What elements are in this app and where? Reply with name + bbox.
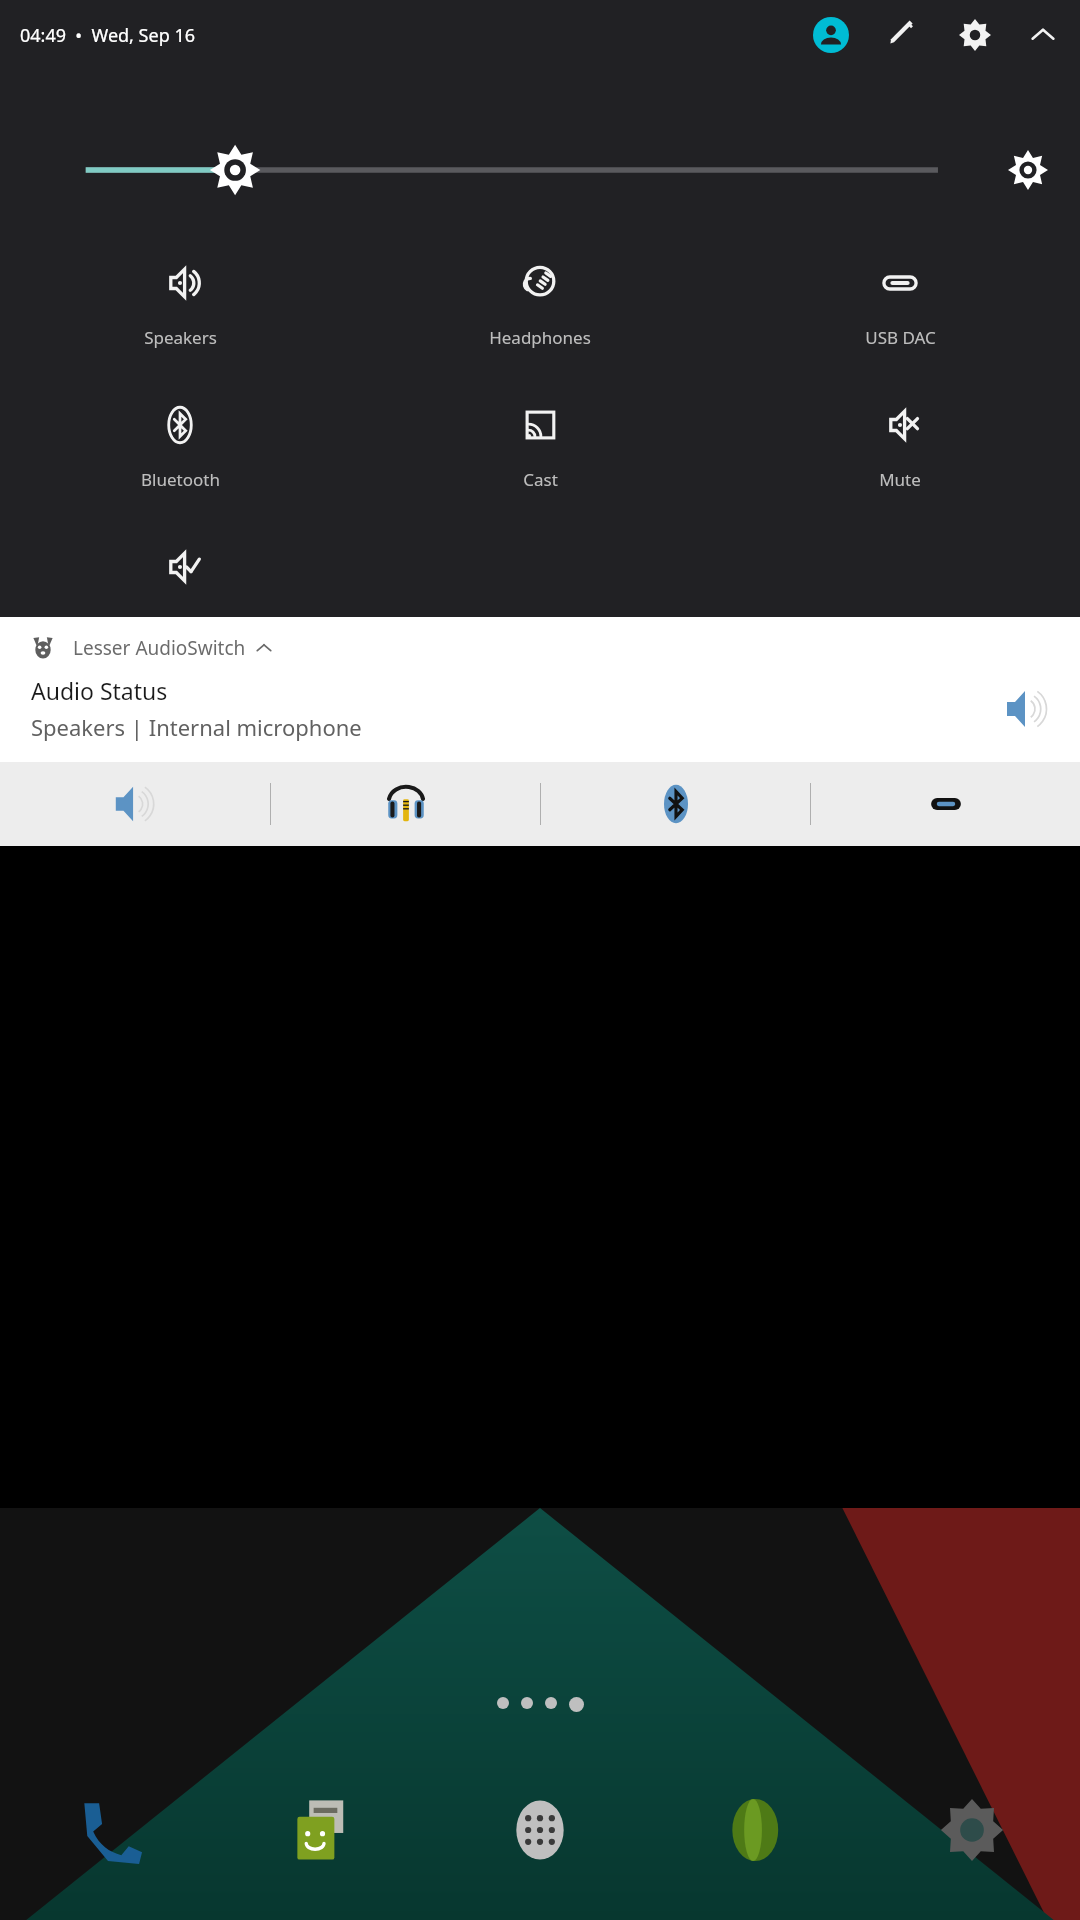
- staticText: 04:49 • Wed, Sep 16: [20, 23, 195, 48]
- button[interactable]: All apps: [432, 1770, 648, 1890]
- button[interactable]: Settings: [952, 12, 998, 58]
- button[interactable]: User account: [808, 12, 854, 58]
- button[interactable]: Edit: [880, 12, 926, 58]
- button[interactable]: Speakers: [0, 246, 360, 355]
- staticText: Headphones: [489, 326, 591, 349]
- button[interactable]: Bluetooth: [0, 388, 360, 497]
- staticText: Speakers: [144, 326, 217, 349]
- staticText: Cast: [523, 468, 558, 491]
- button[interactable]: Headphones: [271, 762, 540, 846]
- button[interactable]: Cast: [360, 388, 720, 497]
- staticText: Speakers | Internal microphone: [31, 712, 362, 742]
- button[interactable]: Phone: [0, 1770, 216, 1890]
- button[interactable]: USB DAC: [811, 762, 1080, 846]
- button[interactable]: Bluetooth: [541, 762, 810, 846]
- button[interactable]: Settings: [864, 1770, 1080, 1890]
- button[interactable]: USB DAC: [720, 246, 1080, 355]
- button[interactable]: Speaker: [0, 762, 270, 846]
- button[interactable]: Browser: [648, 1770, 864, 1890]
- button[interactable]: Messages: [216, 1770, 432, 1890]
- button[interactable]: Auto brightness: [1002, 144, 1054, 196]
- staticText: Bluetooth: [141, 468, 220, 491]
- button[interactable]: Auto brightness: [0, 140, 1080, 200]
- button[interactable]: Headphones: [360, 246, 720, 355]
- button[interactable]: Unmute: [0, 530, 360, 617]
- staticText: Lesser AudioSwitch: [73, 635, 246, 661]
- staticText: Mute: [879, 468, 921, 491]
- button[interactable]: Mute: [720, 388, 1080, 497]
- staticText: Audio Status: [31, 675, 168, 706]
- button[interactable]: Lesser AudioSwitch: [0, 617, 1080, 762]
- staticText: USB DAC: [865, 326, 936, 349]
- button[interactable]: Collapse: [1020, 12, 1066, 58]
